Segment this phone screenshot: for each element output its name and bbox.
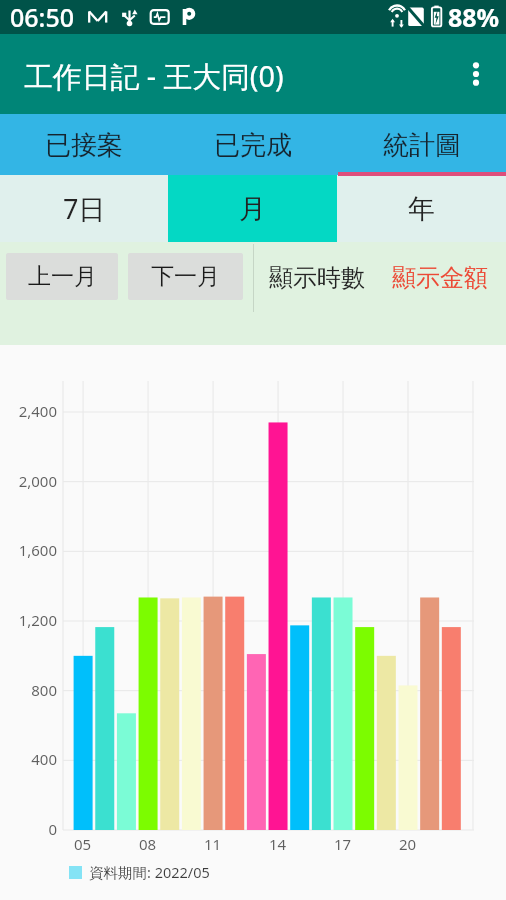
- staticText: 400: [31, 749, 57, 769]
- staticText: 統計圖: [383, 129, 461, 162]
- staticText: 工作日記 - 王大同(0): [24, 56, 284, 95]
- staticText: 11: [204, 834, 222, 854]
- staticText: 20: [399, 834, 417, 854]
- staticText: 月: [239, 192, 266, 226]
- button[interactable]: 下一月: [128, 253, 243, 300]
- button[interactable]: 顯示時數: [262, 248, 372, 308]
- button[interactable]: 月: [168, 175, 337, 242]
- staticText: 下一月: [151, 262, 220, 291]
- staticText: 顯示金額: [392, 263, 488, 293]
- button[interactable]: More options: [454, 52, 498, 96]
- staticText: 800: [31, 680, 57, 700]
- staticText: 88%: [448, 0, 500, 34]
- staticText: 17: [334, 834, 352, 854]
- staticText: 05: [74, 834, 92, 854]
- staticText: 2,000: [18, 471, 57, 491]
- button[interactable]: 已接案: [0, 114, 168, 175]
- staticText: 1,200: [18, 610, 57, 630]
- button[interactable]: 年: [337, 175, 506, 242]
- staticText: 7日: [63, 190, 106, 227]
- button[interactable]: 上一月: [6, 253, 118, 300]
- staticText: 1,600: [18, 540, 57, 560]
- staticText: 顯示時數: [269, 263, 365, 293]
- button[interactable]: 統計圖: [337, 114, 506, 175]
- staticText: 08: [139, 834, 157, 854]
- staticText: 06:50: [10, 0, 75, 34]
- button[interactable]: 已完成: [168, 114, 337, 175]
- staticText: 2,400: [18, 401, 57, 421]
- staticText: 已接案: [45, 129, 123, 162]
- staticText: 0: [48, 819, 57, 839]
- staticText: 上一月: [28, 262, 97, 291]
- staticText: 資料期間: 2022/05: [89, 862, 210, 882]
- staticText: 已完成: [214, 129, 292, 162]
- staticText: 年: [408, 192, 435, 226]
- button[interactable]: 7日: [0, 175, 168, 242]
- button[interactable]: 顯示金額: [385, 248, 495, 308]
- staticText: 14: [269, 834, 287, 854]
